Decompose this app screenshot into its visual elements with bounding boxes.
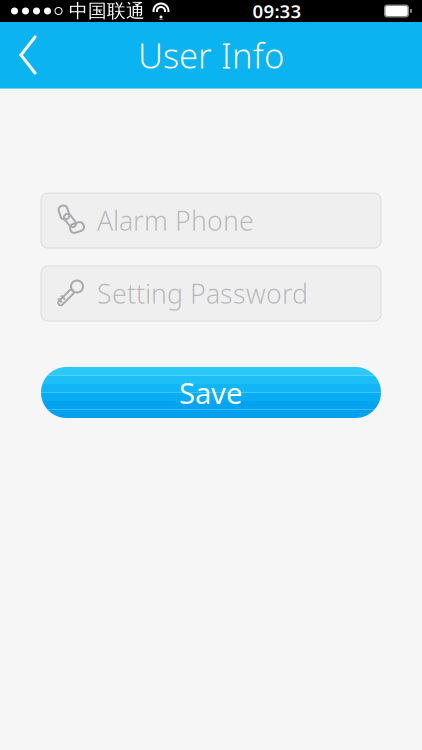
staticText: Alarm Phone (97, 203, 254, 238)
button[interactable]: Save (41, 367, 381, 418)
staticText: 中国联通 (69, 0, 145, 22)
button[interactable]: Setting Password (41, 266, 381, 321)
staticText: Save (179, 373, 243, 412)
button[interactable]: Back (0, 22, 56, 88)
staticText: User Info (138, 32, 284, 78)
button[interactable]: Alarm Phone (41, 193, 381, 248)
staticText: 09:33 (252, 0, 301, 23)
staticText: Setting Password (97, 276, 308, 311)
